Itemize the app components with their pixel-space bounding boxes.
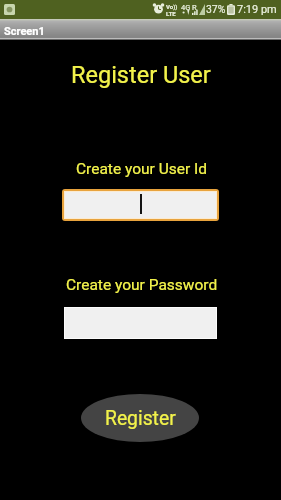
staticText: Register User [71,61,211,89]
button[interactable]: User Id input [65,192,216,218]
staticText: 7:19 pm [237,3,277,16]
staticText: LTE [166,10,176,17]
staticText: Create your User Id [76,160,208,178]
staticText: Create your Password [66,276,218,294]
staticText: Vo)) [166,3,178,10]
button[interactable]: Register [81,394,199,442]
staticText: Screen1 [4,25,45,38]
staticText: Register [105,407,176,430]
staticText: R [192,3,197,12]
staticText: 37% [206,3,226,15]
staticText: 4G [181,3,191,12]
